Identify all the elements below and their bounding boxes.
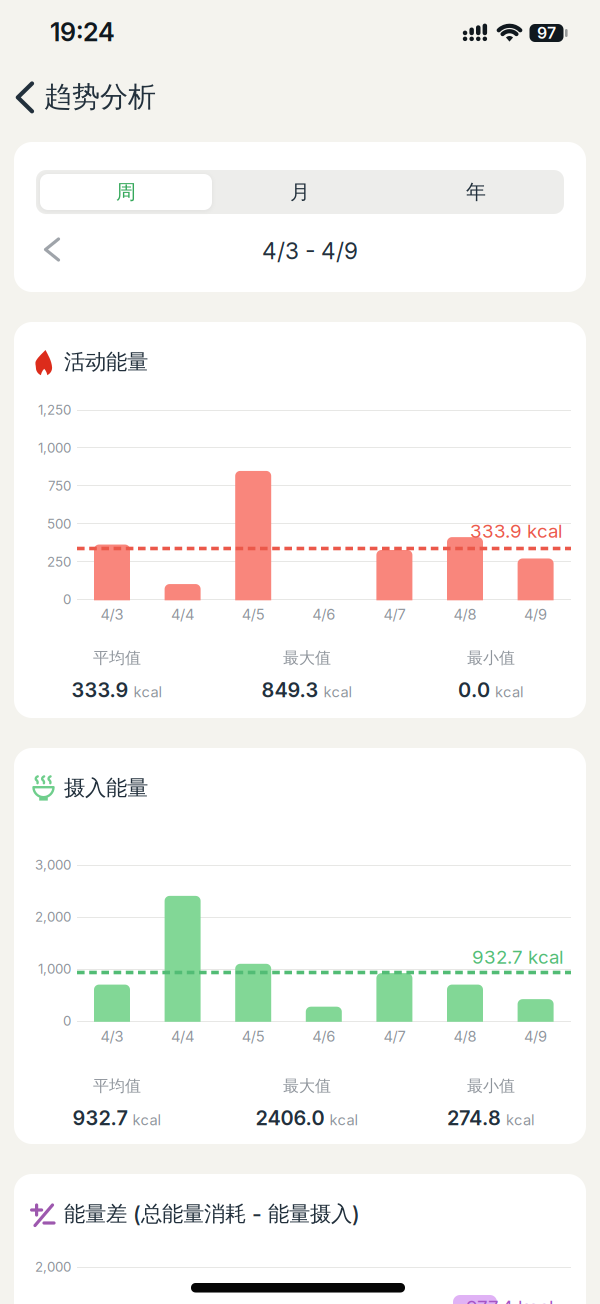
staticText: 4/8 — [453, 1028, 476, 1045]
button[interactable]: 年 — [388, 170, 564, 214]
staticText: 97 — [537, 24, 556, 42]
staticText: 333.9 — [71, 678, 128, 702]
staticText: 4/3 — [100, 1028, 123, 1045]
staticText: 最小值 — [467, 1076, 515, 1096]
staticText: 2406.0 — [255, 1106, 324, 1130]
staticText: 1,250 — [38, 402, 71, 418]
staticText: 最大值 — [283, 648, 331, 668]
staticText: kcal — [132, 1111, 161, 1129]
staticText: 977.4 kcal — [466, 1296, 554, 1304]
button[interactable]: 月 — [212, 170, 388, 214]
staticText: kcal — [506, 1111, 535, 1129]
staticText: 活动能量 — [64, 349, 148, 375]
staticText: kcal — [495, 683, 524, 701]
button[interactable]: 周 — [40, 174, 212, 210]
staticText: 摄入能量 — [64, 775, 148, 801]
staticText: 0 — [63, 1013, 71, 1029]
staticText: 4/8 — [453, 606, 476, 623]
staticText: 月 — [290, 180, 310, 204]
staticText: 500 — [47, 516, 71, 532]
staticText: 趋势分析 — [44, 80, 156, 114]
staticText: 333.9 kcal — [470, 520, 563, 542]
button[interactable] — [7, 78, 43, 117]
staticText: 2,000 — [35, 1259, 71, 1275]
staticText: 4/6 — [312, 1028, 335, 1045]
staticText: 4/5 — [242, 1028, 265, 1045]
staticText: 4/7 — [383, 606, 405, 623]
staticText: 19:24 — [50, 17, 115, 47]
staticText: 0.0 — [458, 678, 490, 702]
staticText: 1,000 — [38, 961, 71, 977]
staticText: 能量差 (总能量消耗 - 能量摄入) — [64, 1201, 360, 1227]
staticText: 周 — [116, 180, 136, 204]
staticText: 1,000 — [38, 440, 71, 456]
staticText: 750 — [48, 478, 71, 494]
staticText: 平均值 — [93, 1076, 141, 1096]
staticText: 274.8 — [447, 1106, 501, 1130]
staticText: 849.3 — [261, 678, 318, 702]
staticText: 250 — [47, 554, 71, 570]
staticText: 3,000 — [35, 857, 71, 873]
staticText: 4/3 — [100, 606, 123, 623]
staticText: 932.7 — [72, 1106, 127, 1130]
staticText: 4/3 - 4/9 — [262, 238, 358, 264]
staticText: 4/9 — [524, 606, 547, 623]
staticText: kcal — [329, 1111, 358, 1129]
staticText: 4/5 — [242, 606, 265, 623]
staticText: kcal — [133, 683, 162, 701]
button[interactable] — [37, 232, 69, 268]
staticText: 4/4 — [171, 606, 194, 623]
staticText: 4/6 — [312, 606, 335, 623]
staticText: 0 — [63, 592, 71, 607]
staticText: 4/9 — [524, 1028, 547, 1045]
staticText: 年 — [466, 180, 486, 204]
staticText: 4/7 — [383, 1028, 405, 1045]
staticText: 932.7 kcal — [472, 946, 564, 968]
staticText: 4/4 — [171, 1028, 194, 1045]
staticText: 平均值 — [93, 648, 141, 668]
staticText: kcal — [323, 683, 352, 701]
staticText: 最小值 — [467, 648, 515, 668]
staticText: 最大值 — [283, 1076, 331, 1096]
staticText: 2,000 — [35, 909, 71, 925]
